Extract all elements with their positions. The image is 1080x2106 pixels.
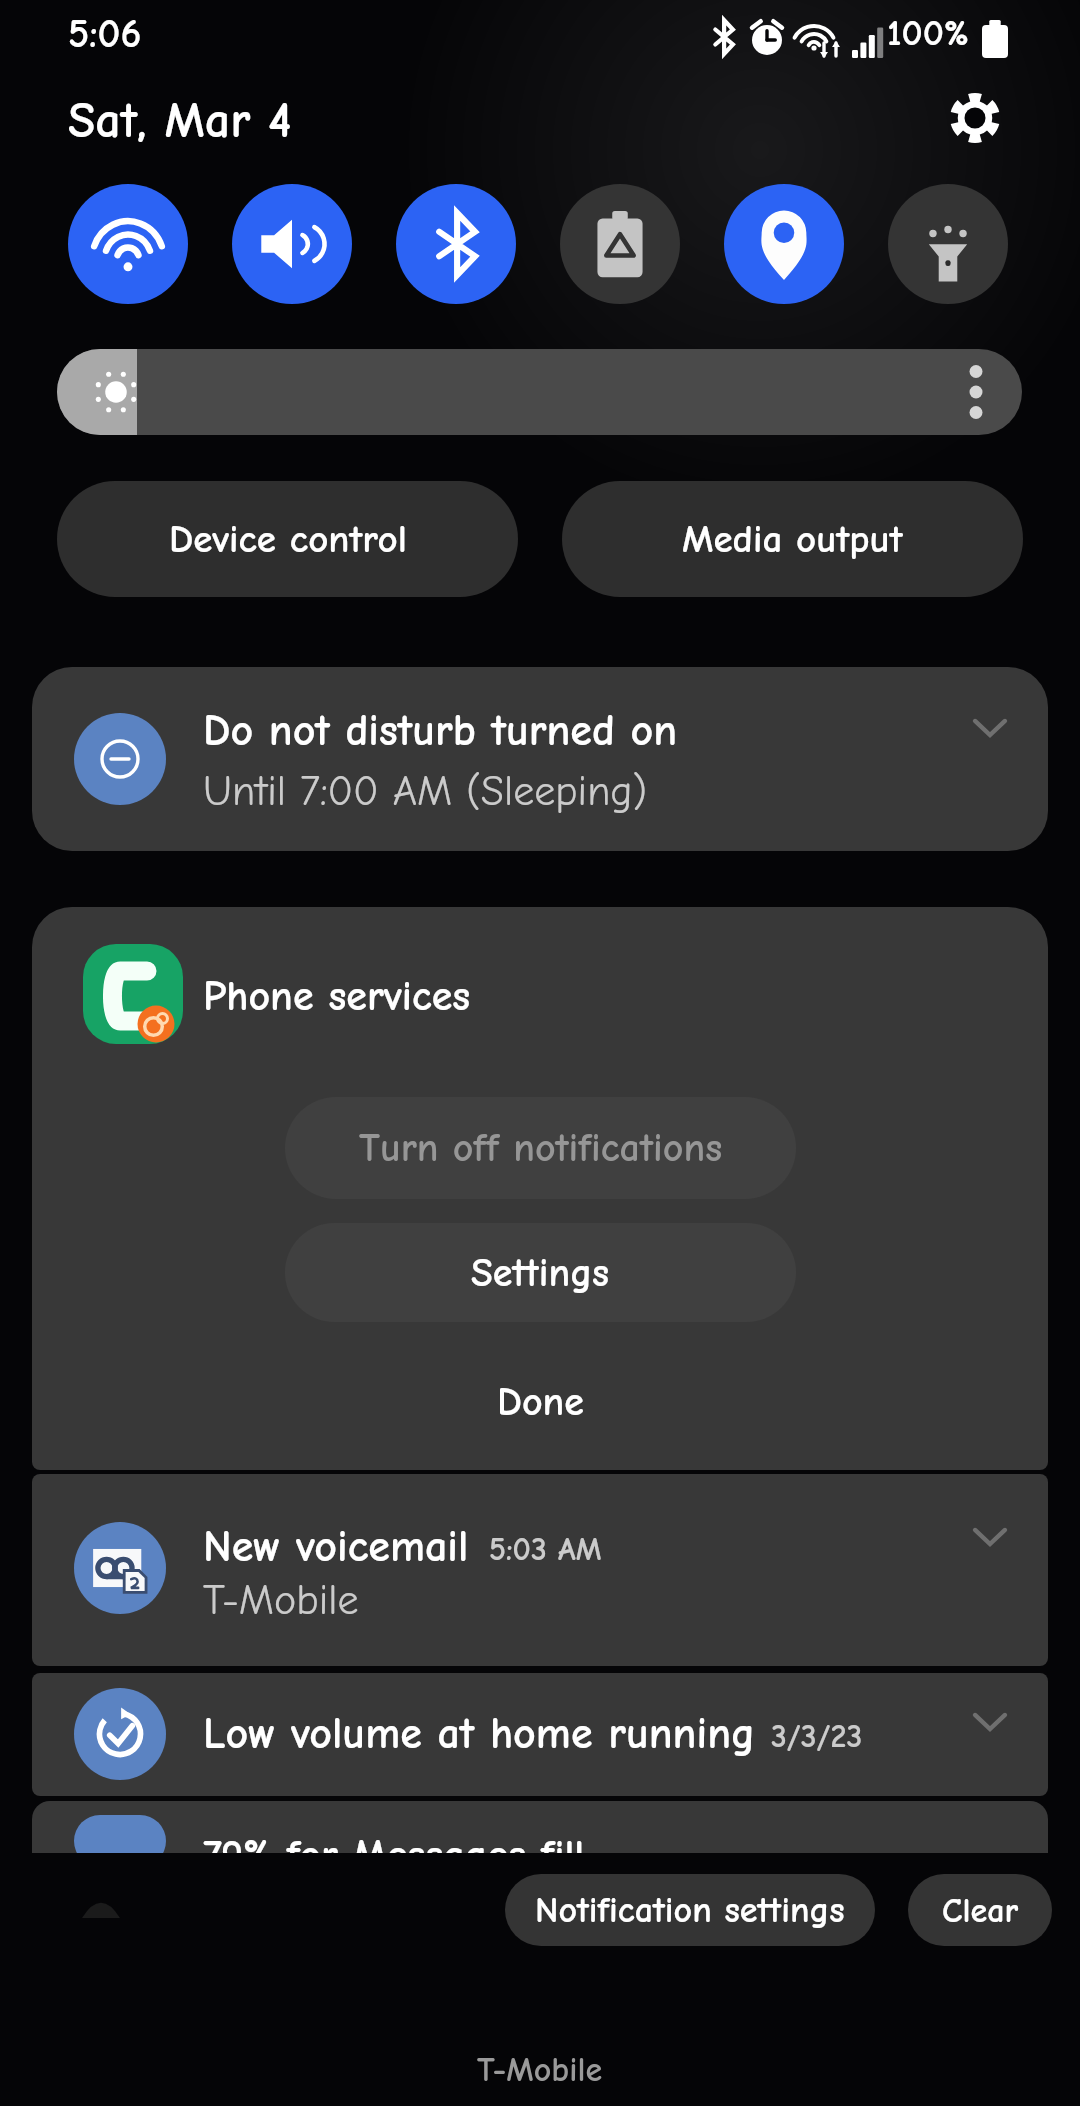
button[interactable]: Brightness <box>57 349 1022 435</box>
staticText: New voicemail <box>203 1521 469 1572</box>
button[interactable]: Do not disturb turned on <box>32 667 1048 851</box>
button[interactable]: Settings <box>935 78 1015 158</box>
button[interactable]: 79% for Messages fill <box>32 1801 1048 1853</box>
button[interactable]: Battery saver <box>560 184 680 304</box>
button[interactable]: Low volume at home running <box>32 1673 1048 1796</box>
staticText: Media output <box>682 517 903 562</box>
staticText: Sat, Mar 4 <box>68 92 292 150</box>
button[interactable]: Media output <box>562 481 1023 597</box>
button[interactable]: Device control <box>57 481 518 597</box>
staticText: Notification settings <box>535 1890 845 1931</box>
staticText: Turn off notifications <box>359 1125 723 1171</box>
staticText: Do not disturb turned on <box>203 705 678 756</box>
staticText: Until 7:00 AM (Sleeping) <box>203 767 648 815</box>
staticText: T-Mobile <box>477 2050 603 2089</box>
button[interactable]: Wi-Fi <box>68 184 188 304</box>
staticText: Device control <box>169 517 407 562</box>
staticText: 5:03 AM <box>489 1531 602 1568</box>
staticText: 5:06 <box>68 11 142 57</box>
staticText: Done <box>497 1379 584 1425</box>
button[interactable]: Clear <box>908 1874 1052 1946</box>
staticText: 3/3/23 <box>771 1718 863 1755</box>
button[interactable]: Settings <box>285 1223 796 1322</box>
staticText: Settings <box>471 1250 610 1296</box>
button[interactable]: Bluetooth <box>396 184 516 304</box>
button[interactable]: Location <box>724 184 844 304</box>
staticText: Low volume at home running <box>203 1708 756 1759</box>
button[interactable]: Notification settings <box>505 1874 875 1946</box>
staticText: 79% for Messages fill <box>203 1831 585 1853</box>
staticText: Clear <box>942 1891 1019 1930</box>
button[interactable]: New voicemail <box>32 1474 1048 1666</box>
staticText: T-Mobile <box>203 1576 359 1624</box>
button[interactable]: Flashlight <box>888 184 1008 304</box>
staticText: Phone services <box>203 972 471 1020</box>
button[interactable]: Sound <box>232 184 352 304</box>
button[interactable]: Done <box>32 1347 1048 1457</box>
staticText: 100% <box>887 12 970 55</box>
button[interactable]: Phone services <box>32 907 1048 1470</box>
button[interactable]: Turn off notifications <box>285 1097 796 1199</box>
